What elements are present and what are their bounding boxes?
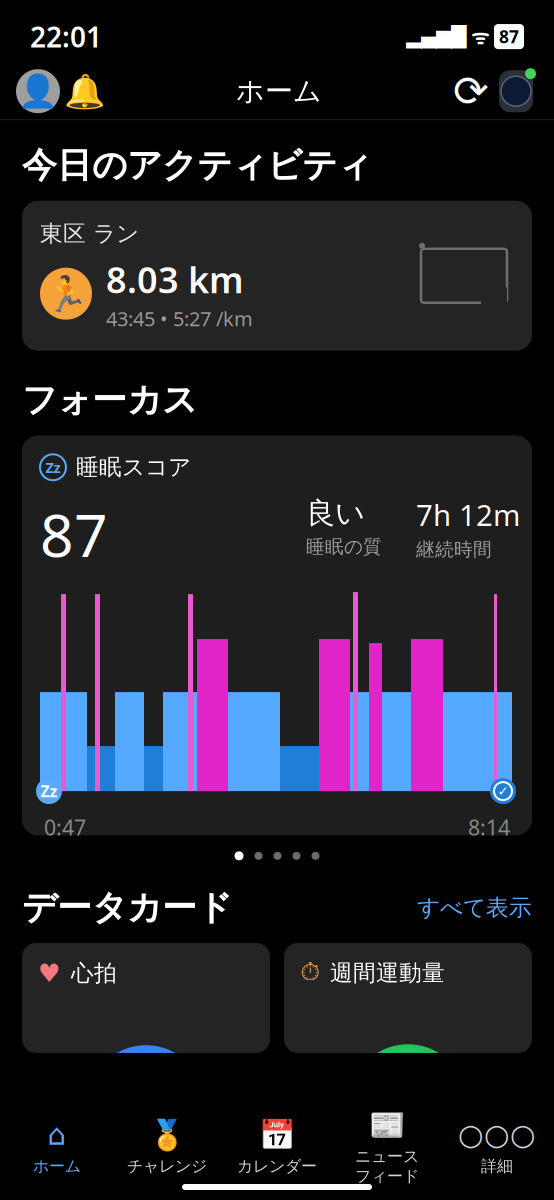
button[interactable]: ⌂ xyxy=(2,1119,112,1175)
staticText: 心拍 xyxy=(71,959,117,987)
staticText: 43:45 • 5:27 /km xyxy=(106,305,253,332)
button[interactable]: ♥ xyxy=(22,943,270,1053)
staticText: 🏅 xyxy=(148,1118,185,1151)
button[interactable]: Notifications xyxy=(60,69,110,113)
staticText: チャレンジ xyxy=(127,1156,207,1176)
staticText: 🏃 xyxy=(44,274,87,313)
staticText: データカード xyxy=(22,886,232,929)
staticText: 今日のアクティビティ xyxy=(22,144,372,187)
button[interactable]: 🏅 xyxy=(112,1119,222,1175)
staticText: 22:01 xyxy=(30,18,102,55)
button[interactable]: Device xyxy=(494,68,538,114)
staticText: 👤 xyxy=(18,73,58,109)
staticText: ⏱ xyxy=(300,960,320,985)
staticText: ⟳ xyxy=(453,67,489,115)
staticText: Zz xyxy=(40,780,57,802)
staticText: 📅 xyxy=(258,1118,295,1151)
staticText: ニュースフィード xyxy=(355,1147,419,1186)
staticText: 東区 ラン xyxy=(40,220,139,247)
staticText: 87 xyxy=(499,25,519,48)
staticText: 0:47 xyxy=(44,813,86,841)
staticText: フォーカス xyxy=(22,379,197,421)
button[interactable]: 📅 xyxy=(222,1119,332,1175)
staticText: ○○○ xyxy=(458,1118,536,1151)
staticText: ⌂ xyxy=(47,1118,66,1151)
button[interactable]: 📰 xyxy=(332,1119,442,1175)
staticText: 8.03 km xyxy=(106,255,244,303)
staticText: ♥ xyxy=(38,959,61,988)
staticText: 🔔 xyxy=(64,72,106,110)
staticText: 良い xyxy=(306,495,365,531)
button[interactable]: Sync xyxy=(448,69,494,113)
button[interactable]: ⏱ xyxy=(284,943,532,1053)
staticText: ᯤ xyxy=(466,23,494,50)
staticText: 睡眠スコア xyxy=(76,453,191,481)
staticText: カレンダー xyxy=(237,1156,317,1176)
button[interactable]: 東区 ラン xyxy=(22,201,532,351)
staticText: 週間運動量 xyxy=(330,959,445,987)
staticText: 継続時間 xyxy=(416,538,492,561)
staticText: 📰 xyxy=(368,1108,405,1142)
staticText: 8:14 xyxy=(468,813,510,841)
staticText: 87 xyxy=(40,495,108,573)
button[interactable]: すべて表示 xyxy=(417,894,532,921)
staticText: 詳細 xyxy=(481,1156,513,1176)
staticText: すべて表示 xyxy=(417,894,532,921)
button[interactable]: Profile xyxy=(16,69,60,113)
staticText: 7h 12m xyxy=(416,495,520,534)
staticText: ✓ xyxy=(497,783,508,799)
staticText: ▂▄▆█ xyxy=(406,25,466,48)
staticText: Zz xyxy=(45,457,60,477)
staticText: ホーム xyxy=(236,74,322,108)
button[interactable]: Zz xyxy=(22,435,532,835)
staticText: ホーム xyxy=(33,1156,81,1176)
button[interactable]: ○○○ xyxy=(442,1119,552,1175)
staticText: 睡眠の質 xyxy=(306,535,382,558)
